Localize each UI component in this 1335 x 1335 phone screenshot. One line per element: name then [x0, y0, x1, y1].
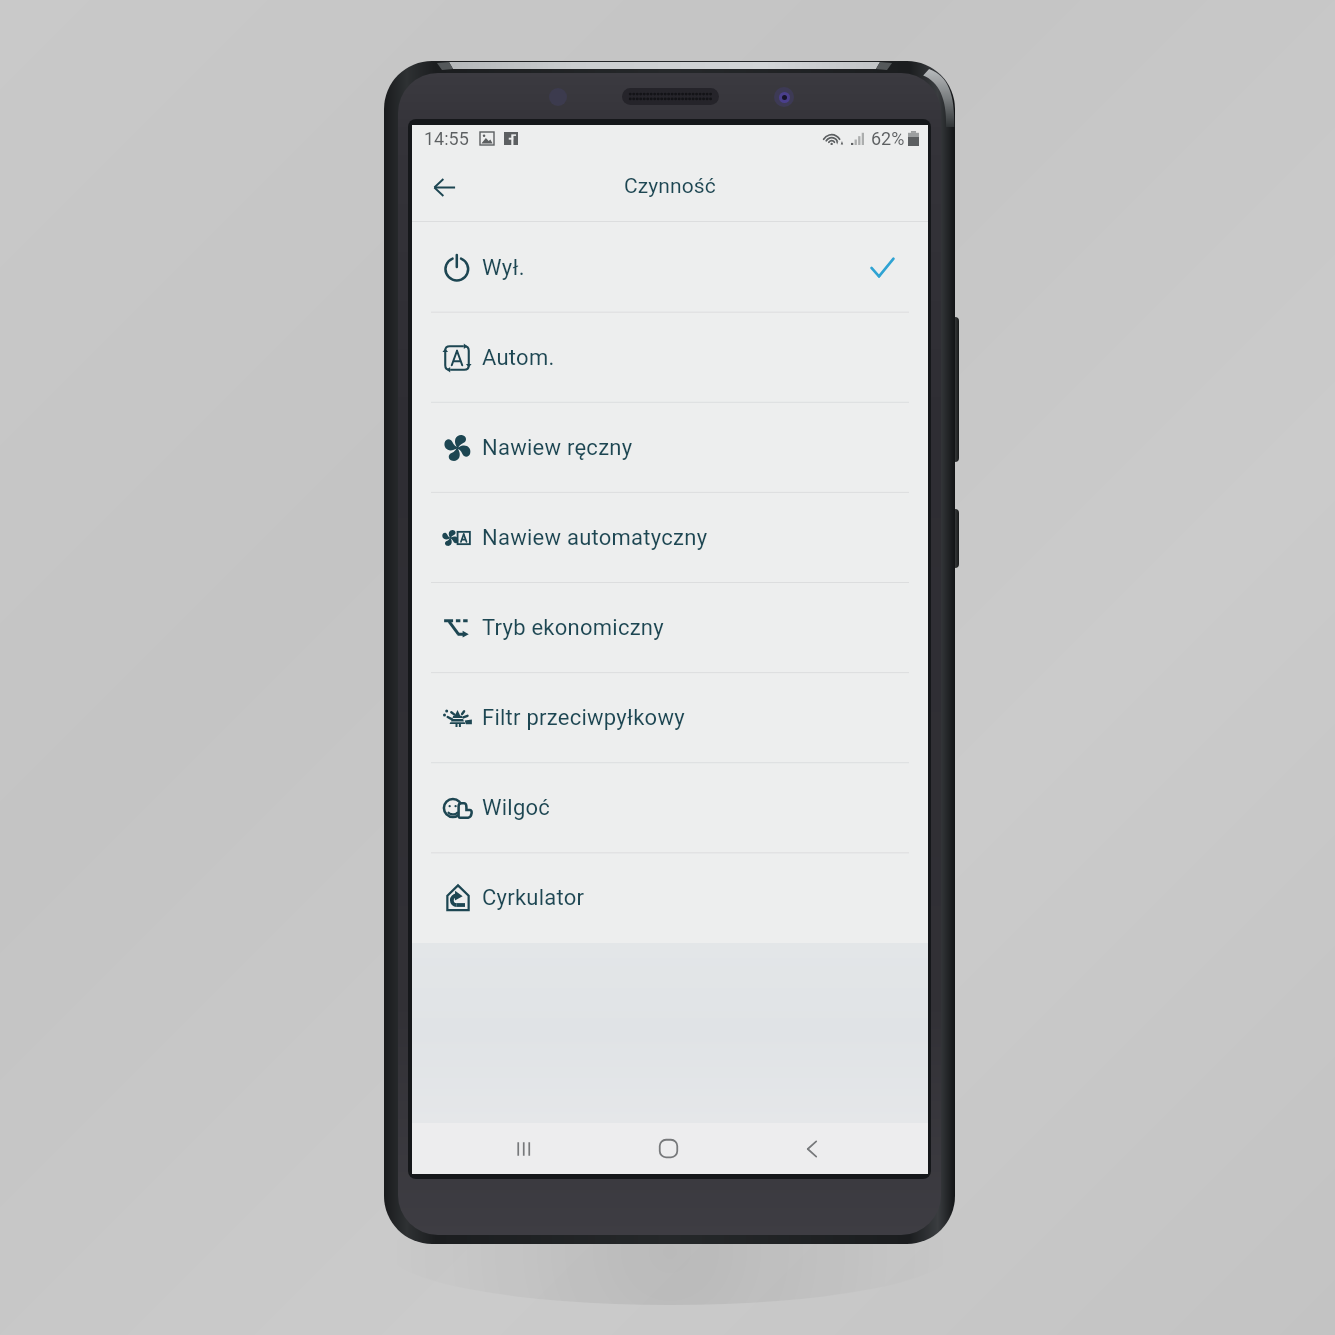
staticText: Filtr przeciwpyłkowy	[482, 705, 685, 731]
button[interactable]: Home	[632, 1123, 704, 1174]
staticText: Cyrkulator	[482, 885, 585, 911]
button[interactable]: Nawiew ręczny	[412, 403, 928, 493]
staticText: Nawiew automatyczny	[482, 525, 708, 551]
staticText: Wył.	[482, 255, 525, 281]
staticText: Nawiew ręczny	[482, 435, 633, 461]
button[interactable]: Wył.	[412, 222, 928, 313]
button[interactable]: Back	[776, 1123, 848, 1174]
staticText: 14:55	[424, 128, 469, 149]
button[interactable]: Nawiew automatyczny	[412, 493, 928, 583]
button[interactable]: Autom.	[412, 313, 928, 403]
staticText: 62%	[871, 128, 905, 149]
button[interactable]: Cyrkulator	[412, 853, 928, 943]
button[interactable]: Wilgoć	[412, 763, 928, 853]
staticText: Autom.	[482, 345, 555, 371]
button[interactable]: Tryb ekonomiczny	[412, 583, 928, 673]
button[interactable]: Back	[422, 165, 466, 209]
staticText: Wilgoć	[482, 795, 551, 821]
button[interactable]: Recent apps	[488, 1123, 560, 1174]
staticText: Czynność	[624, 174, 716, 199]
staticText: Tryb ekonomiczny	[482, 615, 664, 641]
button[interactable]: Filtr przeciwpyłkowy	[412, 673, 928, 763]
